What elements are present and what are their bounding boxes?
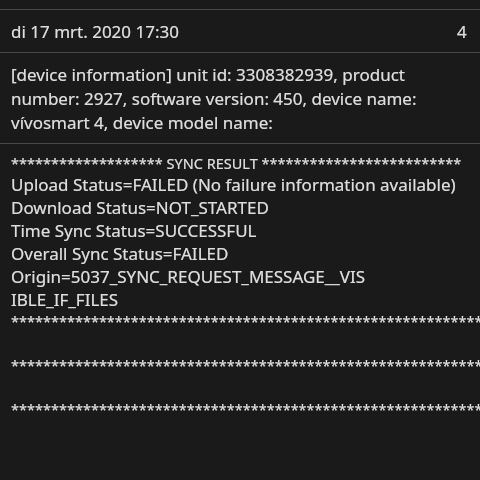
staticText: Overall Sync Status=FAILED xyxy=(11,242,229,265)
staticText: IBLE_IF_FILES xyxy=(11,288,119,311)
button[interactable]: di 17 mrt. 2020 17:30 xyxy=(0,10,480,52)
staticText: Upload Status=FAILED (No failure informa… xyxy=(11,173,456,196)
button[interactable]: ******************* SYNC RESULT ********… xyxy=(0,144,480,419)
staticText: Origin=5037_SYNC_REQUEST_MESSAGE__VIS xyxy=(11,265,366,288)
staticText: ****************************************… xyxy=(11,355,480,375)
button[interactable]: [device information] unit id: 3308382939… xyxy=(0,53,480,143)
staticText: 4 xyxy=(457,20,467,43)
staticText: Time Sync Status=SUCCESSFUL xyxy=(11,219,257,242)
staticText: di 17 mrt. 2020 17:30 xyxy=(11,20,179,43)
staticText: Download Status=NOT_STARTED xyxy=(11,196,269,219)
staticText: ****************************************… xyxy=(11,399,480,419)
staticText: [device information] unit id: 3308382939… xyxy=(11,63,474,134)
staticText: ****************************************… xyxy=(11,311,480,331)
staticText: ******************* SYNC RESULT ********… xyxy=(11,153,462,173)
